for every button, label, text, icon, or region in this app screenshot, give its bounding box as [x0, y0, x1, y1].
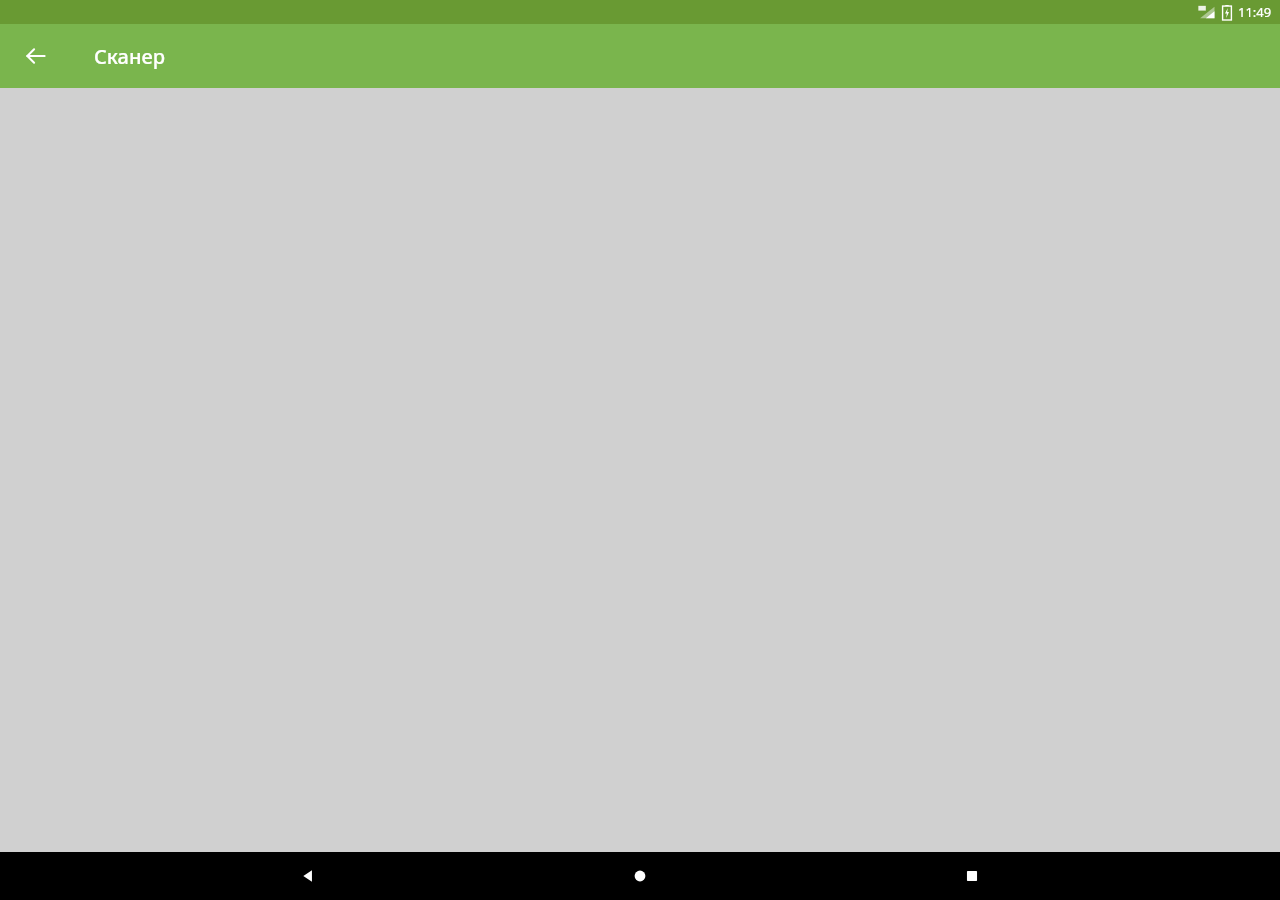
- button[interactable]: Back: [284, 852, 332, 900]
- button[interactable]: Home: [616, 852, 664, 900]
- button[interactable]: Recents: [948, 852, 996, 900]
- button[interactable]: Back: [12, 32, 60, 80]
- staticText: 11:49: [1238, 3, 1272, 21]
- staticText: Сканер: [94, 43, 165, 70]
